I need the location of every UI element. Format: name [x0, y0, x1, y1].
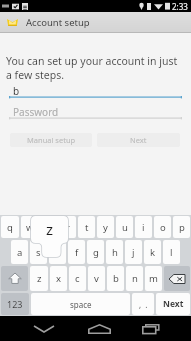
button[interactable]: i: [135, 216, 152, 238]
staticText: space: [70, 299, 92, 310]
button[interactable]: Delete: [164, 266, 190, 291]
staticText: f: [75, 246, 79, 259]
button[interactable]: Shift: [1, 266, 28, 291]
button[interactable]: q: [1, 216, 19, 238]
button[interactable]: Next: [97, 133, 180, 147]
button[interactable]: w: [21, 216, 38, 238]
button[interactable]: h: [106, 240, 123, 264]
button[interactable]: p: [173, 216, 190, 238]
staticText: v: [94, 272, 99, 285]
staticText: , .: [139, 299, 148, 310]
button[interactable]: x: [50, 266, 67, 291]
staticText: 2:33: [172, 1, 188, 12]
button[interactable]: s: [30, 240, 47, 264]
staticText: z: [37, 272, 42, 285]
staticText: Next: [130, 135, 147, 145]
button[interactable]: l: [163, 240, 180, 264]
button[interactable]: Back: [26, 316, 62, 341]
staticText: c: [75, 272, 80, 285]
staticText: t: [85, 221, 89, 234]
button[interactable]: g: [87, 240, 104, 264]
staticText: b: [113, 272, 119, 285]
button[interactable]: z: [30, 266, 48, 291]
button[interactable]: u: [116, 216, 133, 238]
button[interactable]: m: [145, 266, 162, 291]
button[interactable]: , .: [132, 293, 154, 315]
button[interactable]: d: [49, 240, 66, 264]
staticText: l: [170, 246, 173, 259]
staticText: d: [55, 246, 61, 259]
button[interactable]: r: [59, 216, 76, 238]
staticText: u: [122, 221, 128, 234]
staticText: You can set up your account in just a fe…: [6, 54, 185, 82]
staticText: w: [26, 221, 34, 234]
button[interactable]: n: [126, 266, 143, 291]
button[interactable]: 123: [1, 293, 29, 315]
button[interactable]: j: [125, 240, 142, 264]
staticText: n: [132, 272, 138, 285]
staticText: q: [7, 221, 13, 234]
staticText: o: [160, 221, 166, 234]
staticText: s: [36, 246, 41, 259]
button[interactable]: Manual setup: [10, 133, 92, 147]
button[interactable]: space: [31, 293, 130, 315]
staticText: g: [93, 246, 99, 259]
staticText: Next: [163, 298, 184, 310]
button[interactable]: t: [78, 216, 95, 238]
button[interactable]: a: [11, 240, 28, 264]
staticText: Password: [13, 105, 59, 117]
staticText: r: [66, 221, 70, 234]
button[interactable]: Recent apps: [132, 316, 168, 341]
staticText: m: [149, 272, 158, 285]
button[interactable]: y: [97, 216, 114, 238]
staticText: p: [179, 221, 185, 234]
button[interactable]: Home: [81, 316, 117, 341]
button[interactable]: Next: [156, 293, 190, 315]
button[interactable]: f: [68, 240, 85, 264]
staticText: h: [112, 246, 118, 259]
button[interactable]: k: [144, 240, 161, 264]
staticText: Account setup: [26, 16, 90, 29]
staticText: x: [56, 272, 62, 285]
staticText: i: [142, 221, 145, 234]
button[interactable]: b: [107, 266, 124, 291]
staticText: Manual setup: [27, 135, 76, 145]
button[interactable]: e: [40, 216, 57, 238]
staticText: y: [103, 221, 108, 234]
staticText: b: [13, 84, 20, 96]
button[interactable]: o: [154, 216, 171, 238]
staticText: a: [17, 246, 23, 259]
button[interactable]: c: [69, 266, 86, 291]
staticText: 123: [7, 298, 23, 310]
staticText: z: [46, 219, 54, 239]
staticText: e: [46, 221, 52, 234]
staticText: j: [132, 246, 135, 259]
staticText: k: [150, 246, 156, 259]
button[interactable]: v: [88, 266, 105, 291]
